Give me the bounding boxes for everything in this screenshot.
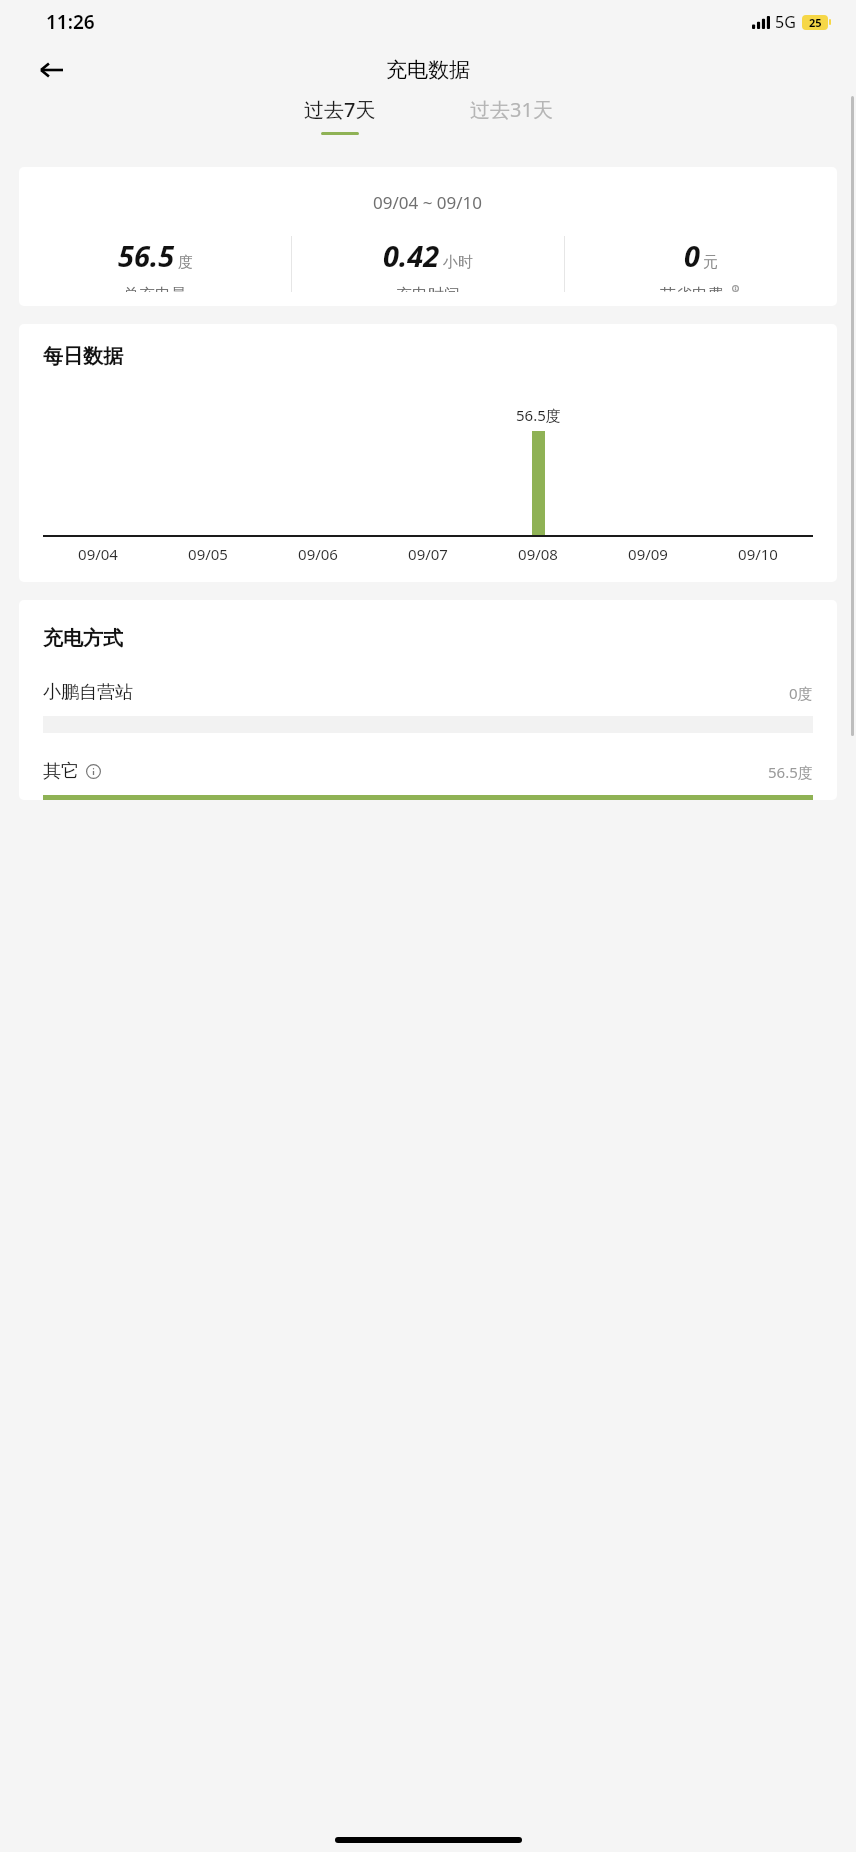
staticText: 0度 [789,683,813,703]
staticText: 09/07 [373,544,483,564]
button[interactable]: 返回 [28,46,76,94]
staticText: 其它 [43,760,79,783]
staticText: 总充电量 [123,285,187,292]
staticText: 节省电费 [660,285,724,292]
staticText: 过去7天 [304,96,376,123]
staticText: 25 [809,15,822,30]
staticText: 小时 [443,253,473,272]
staticText: 09/04 [43,544,153,564]
staticText: 09/10 [703,544,813,564]
staticText: 56.5度 [768,762,813,782]
staticText: 09/04 ~ 09/10 [373,191,483,214]
staticText: 充电数据 [386,57,470,83]
staticText: 每日数据 [43,344,123,369]
button[interactable]: 过去31天 [464,96,559,135]
staticText: 0.42 [383,236,440,275]
staticText: 元 [703,253,718,272]
staticText: 09/09 [593,544,703,564]
staticText: 56.5度 [516,405,561,425]
staticText: 56.5 [118,236,175,275]
staticText: 小鹏自营站 [43,681,133,704]
staticText: 充电时间 [396,285,460,292]
staticText: 0 [684,236,700,275]
staticText: 09/08 [483,544,593,564]
staticText: 过去31天 [470,96,553,123]
button[interactable]: 过去7天 [298,96,382,135]
staticText: 09/06 [263,544,373,564]
button[interactable]: 小鹏自营站 [43,681,813,733]
staticText: 5G [775,11,796,33]
button[interactable]: 其它 [43,760,813,800]
staticText: 度 [178,253,193,272]
staticText: 11:26 [46,9,95,35]
staticText: 09/05 [153,544,263,564]
staticText: 充电方式 [43,626,123,651]
